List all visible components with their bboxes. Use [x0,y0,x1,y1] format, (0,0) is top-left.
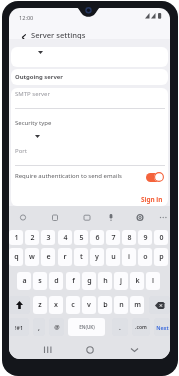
staticText: m [134,300,141,310]
button[interactable]: EN(UK) [68,318,105,336]
button[interactable]: a [17,272,31,290]
button[interactable]: k [130,272,144,290]
button[interactable]: @ [49,318,64,336]
staticText: d [54,276,59,286]
button[interactable]: b [98,296,112,314]
button[interactable] [21,34,27,41]
button[interactable]: , [33,318,45,336]
button[interactable]: 6 [90,230,104,245]
button[interactable] [11,112,168,138]
staticText: Port [15,147,27,155]
staticText: z [38,300,42,310]
staticText: v [87,300,91,310]
button[interactable]: x [49,296,63,314]
button[interactable]: d [49,272,63,290]
button[interactable] [11,140,168,165]
button[interactable] [9,296,30,314]
button[interactable]: o [138,248,152,266]
staticText: s [38,276,42,286]
staticText: u [111,252,116,262]
button[interactable] [11,88,168,110]
button[interactable]: j [114,272,128,290]
staticText: Sign in [141,195,163,204]
staticText: 9 [143,233,148,243]
staticText: y [95,252,99,262]
staticText: r [63,252,67,262]
button[interactable] [37,341,57,357]
button[interactable]: z [33,296,47,314]
button[interactable]: r [58,248,72,266]
button[interactable]: s [33,272,47,290]
staticText: EN(UK) [79,324,95,330]
button[interactable] [149,296,170,314]
button[interactable]: g [82,272,96,290]
button[interactable]: v [82,296,96,314]
staticText: 3 [46,233,51,243]
staticText: n [119,300,124,310]
staticText: o [143,252,148,262]
staticText: i [128,252,130,262]
button[interactable]: e [41,248,55,266]
button[interactable]: i [122,248,136,266]
button[interactable]: . [112,318,128,336]
staticText: SMTP server [15,90,50,98]
staticText: j [120,276,122,286]
button[interactable] [133,211,147,225]
staticText: , [38,323,40,332]
staticText: x [54,300,58,310]
button[interactable]: 0 [154,230,168,245]
button[interactable]: f [66,272,80,290]
button[interactable]: u [106,248,120,266]
staticText: Server settings [31,30,86,40]
staticText: a [22,276,27,286]
staticText: h [103,276,108,286]
button[interactable]: n [114,296,128,314]
button[interactable]: l [146,272,160,290]
button[interactable]: !#1 [9,318,29,336]
button[interactable] [11,167,168,186]
button[interactable]: p [154,248,168,266]
button[interactable]: .com [132,318,150,336]
button[interactable] [104,211,118,225]
staticText: 0 [159,233,164,243]
staticText: 6 [95,233,100,243]
button[interactable]: Sign in [132,192,170,206]
staticText: l [152,276,154,286]
button[interactable] [122,341,142,357]
button[interactable]: 8 [122,230,136,245]
button[interactable]: h [98,272,112,290]
staticText: f [72,276,75,286]
button[interactable]: Next [154,318,170,336]
staticText: c [71,300,75,310]
button[interactable]: 9 [138,230,152,245]
button[interactable]: 7 [106,230,120,245]
button[interactable] [11,47,168,67]
button[interactable]: y [90,248,104,266]
staticText: q [14,252,19,262]
button[interactable]: 1 [9,230,23,245]
button[interactable]: 2 [25,230,39,245]
staticText: w [29,252,35,262]
button[interactable] [16,211,30,225]
staticText: 1 [14,233,19,243]
staticText: . [119,323,121,332]
button[interactable] [146,173,162,182]
staticText: 4 [63,233,68,243]
button[interactable] [80,341,100,357]
button[interactable]: q [9,248,23,266]
staticText: p [159,252,164,262]
button[interactable]: m [130,296,144,314]
button[interactable] [156,211,170,225]
staticText: t [80,252,83,262]
button[interactable]: t [74,248,88,266]
button[interactable] [80,211,94,225]
staticText: .com [135,324,147,331]
button[interactable] [48,211,62,225]
staticText: 2 [30,233,35,243]
button[interactable]: w [25,248,39,266]
button[interactable]: 3 [41,230,55,245]
button[interactable]: 5 [74,230,88,245]
button[interactable]: c [66,296,80,314]
staticText: Next [156,324,169,331]
button[interactable]: 4 [58,230,72,245]
